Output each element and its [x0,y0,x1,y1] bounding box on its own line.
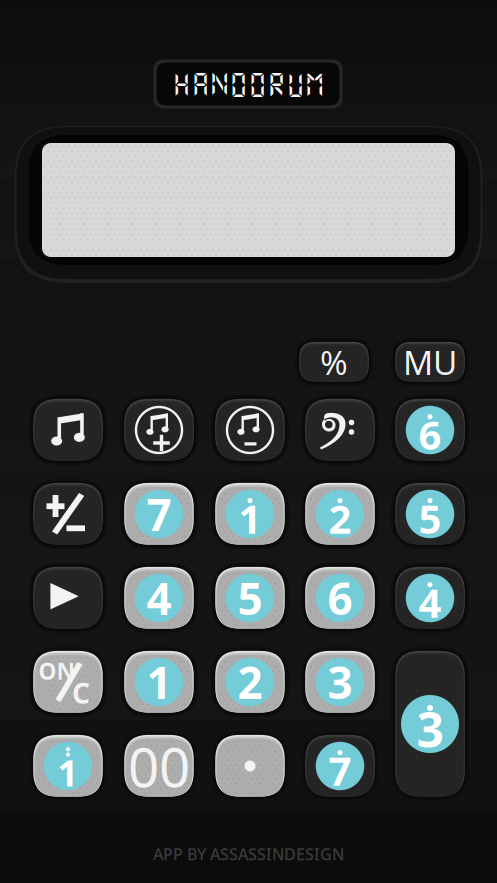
staticText: APP BY ASSASSINDESIGN [153,843,344,865]
staticText: % [320,340,348,384]
staticText: 4 [418,576,441,629]
staticText: 7 [146,485,171,543]
button[interactable]: MU [396,343,464,381]
button[interactable]: 3 [306,652,374,712]
staticText: 6 [327,569,352,627]
button[interactable]: 5 [396,484,464,544]
staticText: 5 [418,492,441,545]
button[interactable]: 6 [306,568,374,628]
button[interactable]: 2 [216,652,284,712]
button[interactable]: Play [34,568,102,628]
staticText: 3 [416,697,443,761]
button[interactable]: 1 [34,736,102,796]
button[interactable]: Bass clef [306,400,374,460]
button[interactable]: Plus minus [34,484,102,544]
button[interactable]: Remove note [216,400,284,460]
button[interactable]: 7 [125,484,193,544]
staticText: 2 [237,653,262,711]
staticText: 2 [328,492,351,545]
button[interactable]: 5 [216,568,284,628]
button[interactable]: 1 [216,484,284,544]
staticText: 7 [328,744,351,797]
staticText: 6 [418,408,441,461]
button[interactable]: Percent [300,343,368,381]
staticText: 00 [128,730,190,802]
button[interactable]: 4 [125,568,193,628]
staticText: 1 [238,492,261,545]
button[interactable]: 3 [396,652,464,796]
staticText: 5 [237,569,262,627]
staticText: C [72,674,90,712]
staticText: 1 [146,653,171,711]
staticText: HANDDRUM [172,68,324,99]
button[interactable]: Add note [125,400,193,460]
staticText: 1 [57,749,78,796]
button[interactable]: 7 [306,736,374,796]
button[interactable]: Double zero [125,736,193,796]
button[interactable]: 1 [125,652,193,712]
staticText: 3 [327,653,352,711]
staticText: MU [403,340,457,384]
button[interactable]: Decimal point [216,736,284,796]
staticText: ON [38,656,74,686]
button[interactable]: 6 [396,400,464,460]
button[interactable]: On clear [34,652,102,712]
staticText: 4 [146,569,171,627]
button[interactable]: 4 [396,568,464,628]
button[interactable]: 2 [306,484,374,544]
button[interactable]: Note [34,400,102,460]
